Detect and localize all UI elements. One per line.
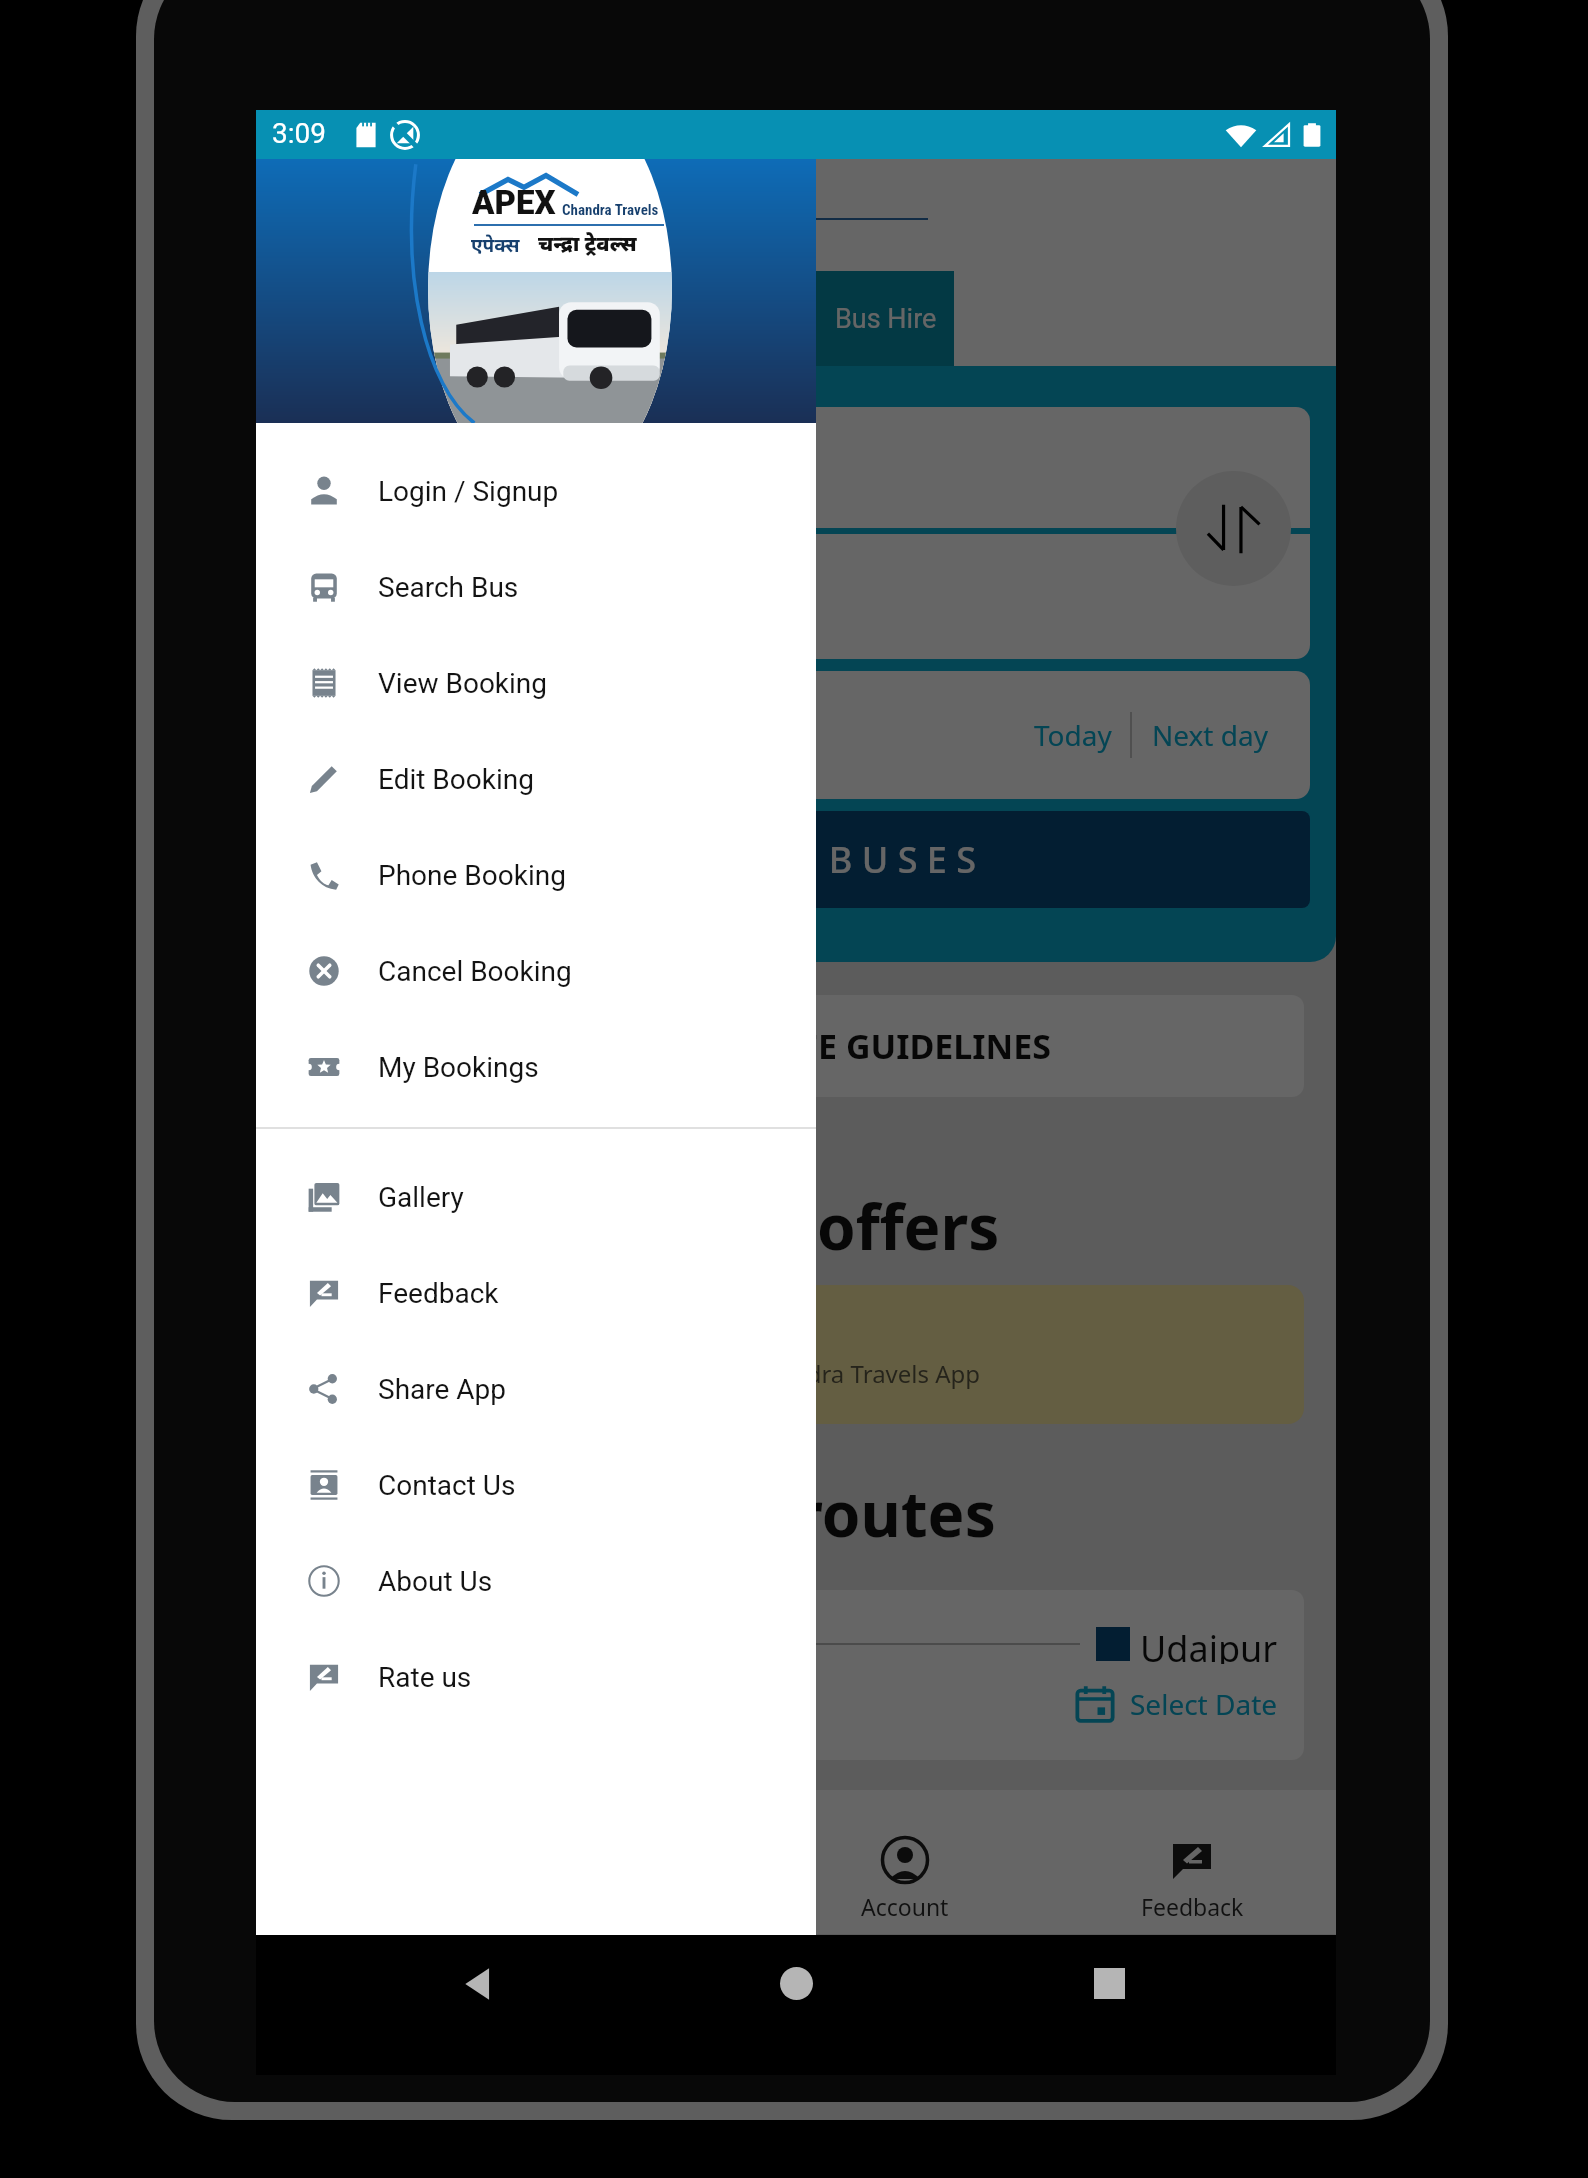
staticText: Bus Ticket — [682, 303, 808, 335]
staticText: Popular routes — [539, 1471, 996, 1555]
staticText: Phone Booking — [378, 859, 566, 892]
button[interactable]: Home — [231, 1835, 431, 1933]
staticText: एपेक्स — [471, 232, 520, 258]
staticText: About Us — [378, 1565, 493, 1598]
button[interactable]: My Bookings — [256, 1019, 816, 1115]
button[interactable]: Book on Apex Chandra Travels App — [280, 1285, 1304, 1424]
staticText: View Booking — [378, 667, 548, 700]
button[interactable]: Home — [780, 1967, 813, 2000]
staticText: Select Date — [1130, 1685, 1278, 1723]
staticText: Today — [1034, 716, 1112, 754]
staticText: TRAVEL SAFE GUIDELINES — [624, 1023, 1052, 1069]
button[interactable]: Jaipur — [280, 1590, 1304, 1760]
button[interactable]: Contact Us — [256, 1437, 816, 1533]
staticText: Share App — [378, 1373, 507, 1406]
staticText: एपेक्स — [506, 230, 568, 263]
staticText: Next day — [1152, 716, 1268, 754]
button[interactable]: Today — [1024, 704, 1122, 766]
staticText: APEX — [520, 177, 604, 216]
staticText: चन्द्रा ट्रेवल्स — [538, 229, 637, 258]
button[interactable]: About Us — [256, 1533, 816, 1629]
button[interactable]: S E A R C H B U S E S — [284, 811, 1310, 908]
button[interactable]: Rate us — [256, 1629, 816, 1725]
staticText: Exciting offers — [556, 1184, 1000, 1268]
staticText: चन्द्रा ट्रेवल्स — [581, 222, 722, 263]
button[interactable]: Next day — [1142, 704, 1278, 766]
button[interactable]: Share App — [256, 1341, 816, 1437]
button[interactable]: Feedback — [256, 1245, 816, 1341]
staticText: 3:09 — [272, 117, 326, 150]
button[interactable]: Feedback — [1092, 1835, 1292, 1933]
button[interactable]: Bus Ticket — [672, 271, 818, 366]
staticText: Bus Hire — [835, 303, 937, 335]
staticText: Book on Apex Chandra Travels App — [587, 1357, 981, 1390]
staticText: S E A R C H B U S E S — [618, 835, 977, 884]
button[interactable]: TRAVEL SAFE GUIDELINES — [280, 995, 1304, 1097]
staticText: Search Bus — [378, 571, 519, 604]
staticText: My Bookings — [378, 1051, 539, 1084]
button[interactable]: Swap from and to — [1176, 471, 1291, 586]
button[interactable]: Edit Booking — [256, 731, 816, 827]
staticText: From — [318, 449, 397, 493]
button[interactable]: Gallery — [256, 1149, 816, 1245]
staticText: APEX — [472, 183, 556, 222]
button[interactable]: Search Bus — [256, 539, 816, 635]
button[interactable]: Cancel Booking — [256, 923, 816, 1019]
staticText: Udaipur — [1140, 1624, 1278, 1664]
staticText: Edit Booking — [378, 763, 534, 796]
staticText: Rate us — [378, 1661, 472, 1694]
staticText: Account — [861, 1891, 949, 1922]
button[interactable]: Close navigation drawer — [256, 159, 1336, 1935]
staticText: Feedback — [378, 1277, 499, 1310]
staticText: Cancel Booking — [378, 955, 572, 988]
button[interactable]: Account — [805, 1835, 1005, 1933]
button[interactable]: Phone Booking — [256, 827, 816, 923]
button[interactable]: Login / Signup — [256, 443, 816, 539]
staticText: Gallery — [378, 1181, 464, 1214]
button[interactable]: Back — [461, 1966, 497, 2002]
staticText: Login / Signup — [378, 475, 559, 508]
staticText: Contact Us — [378, 1469, 516, 1502]
staticText: Chandra Travels — [610, 187, 752, 213]
staticText: Feedback — [1141, 1891, 1244, 1922]
button[interactable]: View Booking — [256, 635, 816, 731]
button[interactable]: Bus Hire — [818, 271, 954, 366]
staticText: To — [318, 575, 353, 619]
staticText: Chandra Travels — [562, 201, 659, 219]
